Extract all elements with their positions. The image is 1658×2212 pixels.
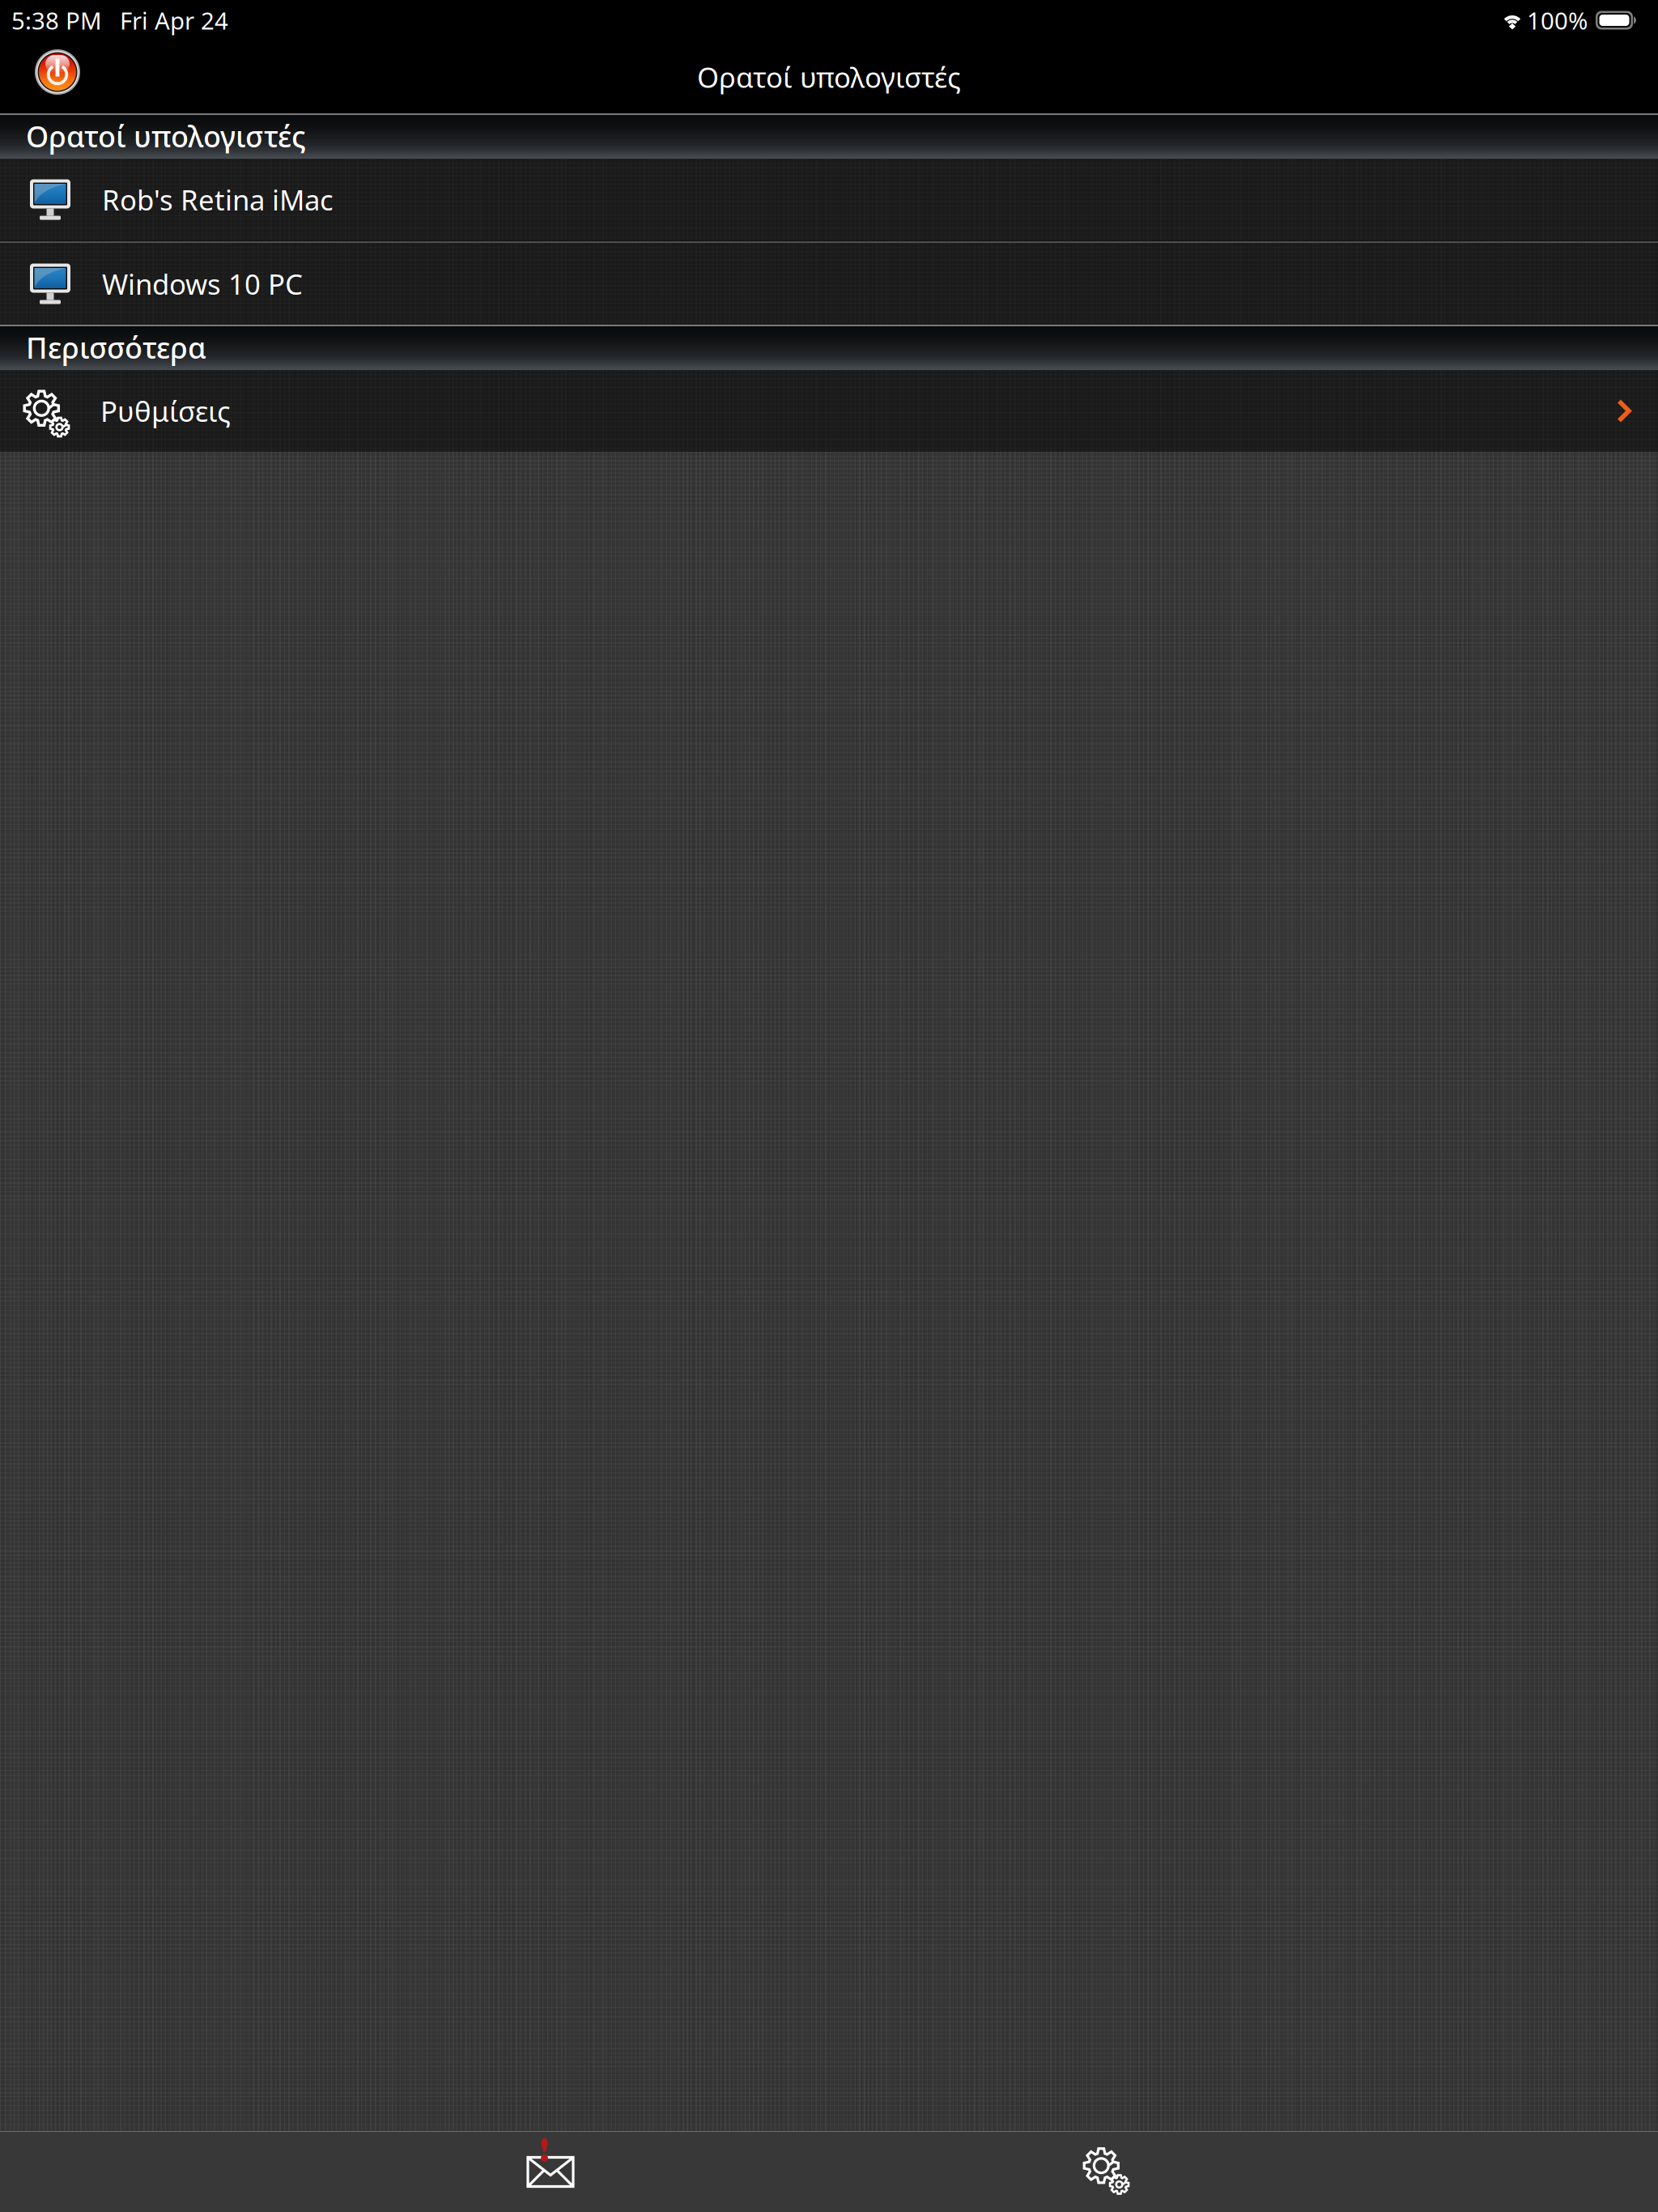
staticText: 5:38 PM	[11, 4, 102, 36]
staticText: Ρυθμίσεις	[100, 392, 231, 430]
staticText: Fri Apr 24	[120, 4, 228, 36]
staticText: Περισσότερα	[26, 328, 206, 367]
button[interactable]: Settings	[1027, 2132, 1188, 2212]
staticText: Ορατοί υπολογιστές	[26, 117, 306, 155]
staticText: 100%	[1527, 4, 1588, 36]
staticText: Windows 10 PC	[102, 265, 303, 302]
button[interactable]: Windows 10 PC	[0, 243, 1658, 325]
button[interactable]: Rob's Retina iMac	[0, 159, 1658, 240]
button[interactable]: Mail	[470, 2132, 631, 2212]
button[interactable]: Ρυθμίσεις	[0, 370, 1658, 452]
staticText: Rob's Retina iMac	[102, 181, 334, 218]
staticText: Ορατοί υπολογιστές	[697, 58, 961, 96]
button[interactable]: Power	[0, 49, 81, 105]
